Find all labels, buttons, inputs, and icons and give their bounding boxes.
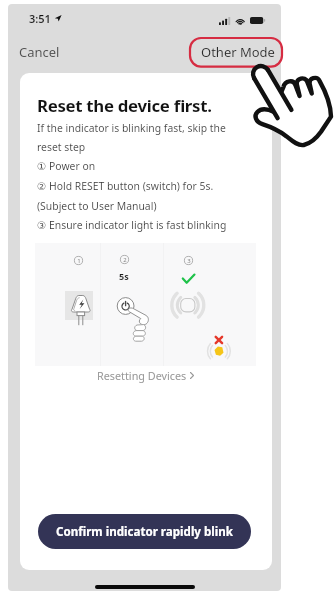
staticText: Resetting Devices: [97, 368, 187, 383]
staticText: Confirm indicator rapidly blink: [56, 524, 233, 540]
staticText: Cancel: [19, 43, 60, 61]
button[interactable]: Resetting Devices: [93, 365, 198, 386]
staticText: 2: [123, 256, 127, 264]
button[interactable]: Other Mode: [192, 37, 281, 67]
staticText: If the indicator is blinking fast, skip …: [37, 121, 227, 232]
button[interactable]: Cancel: [10, 37, 69, 67]
staticText: Other Mode: [201, 43, 275, 61]
staticText: 3: [187, 257, 191, 265]
staticText: 3:51: [29, 11, 51, 26]
button[interactable]: Confirm indicator rapidly blink: [38, 514, 251, 549]
staticText: Reset the device first.: [37, 94, 212, 117]
staticText: 1: [77, 257, 81, 265]
staticText: 5s: [119, 270, 129, 282]
